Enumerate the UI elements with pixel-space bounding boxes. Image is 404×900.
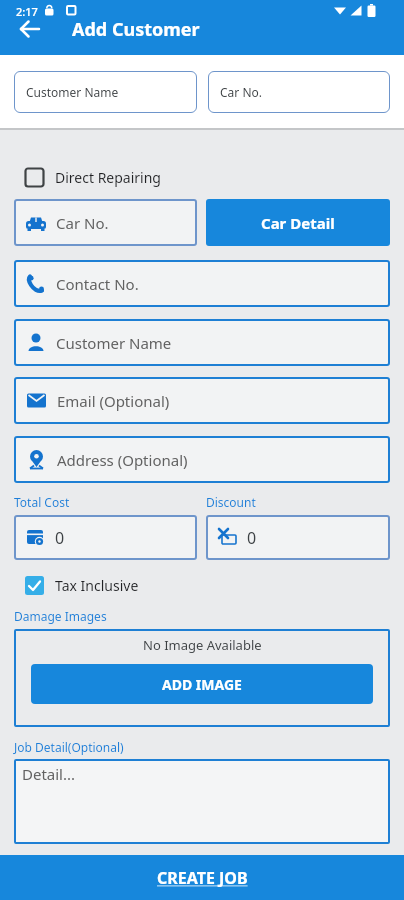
button[interactable]: Car Detail <box>206 199 390 246</box>
staticText: CREATE JOB <box>157 867 248 889</box>
staticText: Contact No. <box>56 274 139 294</box>
staticText: 2:17 <box>16 4 38 16</box>
button[interactable]: Contact No. <box>14 260 390 307</box>
button[interactable]: ADD IMAGE <box>31 664 373 704</box>
staticText: ADD IMAGE <box>162 675 242 694</box>
staticText: Job Detail(Optional) <box>14 739 124 755</box>
staticText: 0 <box>247 527 257 549</box>
staticText: Email (Optional) <box>57 391 170 411</box>
button[interactable]: Car No. <box>14 199 197 246</box>
button[interactable]: Direct Repairing <box>14 168 161 187</box>
staticText: Detail... <box>22 764 76 784</box>
staticText: Tax Inclusive <box>55 576 139 595</box>
button[interactable]: Tax Inclusive <box>14 576 139 595</box>
staticText: Car No. <box>56 213 109 233</box>
button[interactable] <box>18 17 42 41</box>
button[interactable]: Email (Optional) <box>14 377 390 424</box>
button[interactable]: Detail... <box>14 759 390 844</box>
staticText: Car No. <box>220 84 262 100</box>
button[interactable]: Address (Optional) <box>14 436 390 483</box>
staticText: Discount <box>206 494 256 510</box>
staticText: No Image Available <box>143 636 262 654</box>
staticText: Car Detail <box>261 213 335 233</box>
staticText: Address (Optional) <box>57 450 188 470</box>
button[interactable]: Customer Name <box>14 319 390 366</box>
staticText: Add Customer <box>72 17 200 42</box>
staticText: 0 <box>55 527 65 549</box>
button[interactable]: Car No. <box>208 71 390 113</box>
staticText: Customer Name <box>26 84 119 100</box>
staticText: Direct Repairing <box>55 168 161 187</box>
staticText: Damage Images <box>14 608 107 624</box>
button[interactable]: 0 <box>14 515 197 560</box>
staticText: Total Cost <box>14 494 70 510</box>
button[interactable]: Customer Name <box>14 71 197 113</box>
staticText: Customer Name <box>56 333 172 353</box>
button[interactable]: CREATE JOB <box>0 855 404 900</box>
button[interactable]: 0 <box>206 515 390 560</box>
